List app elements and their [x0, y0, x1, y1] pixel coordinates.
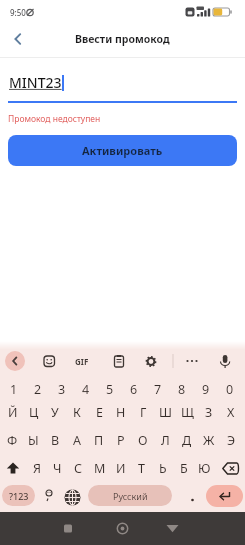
staticText: Е [96, 404, 103, 421]
staticText: GIF [75, 356, 89, 367]
button[interactable]: И [110, 457, 131, 480]
button[interactable]: 8 [170, 378, 194, 401]
button[interactable] [5, 351, 25, 371]
staticText: Б [180, 460, 188, 477]
staticText: Ф [7, 432, 18, 449]
staticText: Ж [203, 432, 215, 449]
staticText: Н [116, 404, 126, 421]
staticText: 6 [130, 381, 138, 398]
button[interactable] [0, 457, 26, 480]
button[interactable]: 2 [26, 378, 50, 401]
staticText: К [73, 404, 81, 421]
staticText: С [74, 460, 83, 477]
staticText: В [51, 432, 60, 449]
button[interactable]: Д [176, 429, 198, 452]
staticText: Ы [28, 432, 39, 449]
button[interactable]: Н [110, 401, 132, 424]
button[interactable]: 5 [98, 378, 122, 401]
button[interactable]: ?123 [2, 485, 35, 506]
button[interactable] [81, 512, 163, 545]
button[interactable]: У [44, 401, 66, 424]
staticText: 8 [178, 381, 186, 398]
staticText: 1 [10, 381, 18, 398]
staticText: Русский [113, 490, 148, 502]
staticText: 0 [226, 381, 234, 398]
button[interactable] [6, 27, 30, 51]
staticText: ?123 [9, 490, 29, 502]
button[interactable]: В [44, 429, 66, 452]
button[interactable]: С [68, 457, 89, 480]
button[interactable]: Ш [154, 401, 176, 424]
staticText: 2 [34, 381, 42, 398]
button[interactable]: Э [220, 429, 242, 452]
staticText: Т [138, 460, 145, 477]
button[interactable] [163, 512, 245, 545]
button[interactable]: Г [132, 401, 154, 424]
button[interactable]: З [198, 401, 220, 424]
staticText: Р [117, 432, 125, 449]
staticText: Активировать [82, 143, 163, 158]
staticText: Л [161, 432, 170, 449]
button[interactable]: 4 [74, 378, 98, 401]
button[interactable]: Х [220, 401, 242, 424]
button[interactable]: 1 [2, 378, 26, 401]
staticText: М [94, 460, 106, 477]
staticText: 5 [106, 381, 114, 398]
button[interactable]: 0 [218, 378, 242, 401]
staticText: Ш [159, 404, 172, 421]
button[interactable]: П [88, 429, 110, 452]
staticText: 4 [82, 381, 90, 398]
button[interactable]: Русский [88, 485, 172, 506]
staticText: А [73, 432, 81, 449]
staticText: Промокод недоступен [8, 113, 101, 125]
button[interactable]: Ф [2, 429, 23, 452]
button[interactable]: Ь [152, 457, 173, 480]
staticText: Я [33, 460, 41, 477]
staticText: Х [227, 404, 235, 421]
button[interactable]: Р [110, 429, 132, 452]
staticText: Г [140, 404, 147, 421]
staticText: 9 [202, 381, 210, 398]
staticText: О [138, 432, 148, 449]
staticText: У [51, 404, 59, 421]
staticText: Й [8, 404, 18, 421]
staticText: Ввести промокод [75, 32, 170, 46]
staticText: Ч [53, 460, 62, 477]
button[interactable]: Ю [194, 457, 215, 480]
button[interactable]: Т [131, 457, 152, 480]
button[interactable]: 9 [194, 378, 218, 401]
button[interactable]: А [66, 429, 88, 452]
button[interactable]: О [132, 429, 154, 452]
staticText: Ь [159, 460, 167, 477]
staticText: И [116, 460, 126, 477]
staticText: П [94, 432, 104, 449]
staticText: З [205, 404, 213, 421]
button[interactable]: Щ [176, 401, 198, 424]
staticText: MINT23 [9, 73, 62, 92]
staticText: Ц [29, 404, 39, 421]
button[interactable]: Ж [198, 429, 220, 452]
staticText: Э [227, 432, 236, 449]
staticText: 7 [154, 381, 162, 398]
button[interactable] [206, 485, 243, 507]
button[interactable]: Б [173, 457, 194, 480]
button[interactable]: К [66, 401, 88, 424]
button[interactable]: Я [27, 457, 47, 480]
staticText: Д [182, 432, 192, 449]
staticText: 9:50 [10, 7, 26, 18]
staticText: 3 [58, 381, 66, 398]
button[interactable]: Е [88, 401, 110, 424]
staticText: Щ [181, 404, 194, 421]
button[interactable] [219, 457, 242, 480]
button[interactable]: Ц [23, 401, 44, 424]
button[interactable]: 3 [50, 378, 74, 401]
button[interactable]: Й [2, 401, 23, 424]
button[interactable]: Ы [23, 429, 44, 452]
button[interactable]: М [89, 457, 110, 480]
button[interactable]: Ч [47, 457, 68, 480]
button[interactable]: 6 [122, 378, 146, 401]
button[interactable]: Активировать [8, 135, 237, 166]
button[interactable]: 7 [146, 378, 170, 401]
button[interactable] [0, 512, 81, 545]
button[interactable]: Л [154, 429, 176, 452]
